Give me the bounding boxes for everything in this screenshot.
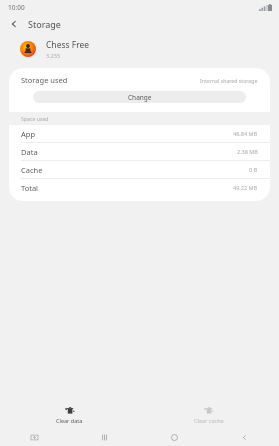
staticText: Data — [21, 147, 38, 157]
staticText: Storage — [28, 18, 61, 30]
staticText: Total — [21, 183, 39, 193]
staticText: Internal shared storage — [200, 77, 258, 84]
button[interactable]: Home — [139, 434, 209, 441]
button[interactable]: Recent apps — [69, 434, 139, 441]
staticText: Chess Free — [46, 39, 90, 51]
staticText: Space used — [21, 115, 49, 122]
button[interactable]: Back — [209, 434, 279, 441]
staticText: 2.38 MB — [237, 148, 258, 155]
staticText: 3.255 — [46, 52, 61, 59]
staticText: Cache — [21, 165, 43, 175]
staticText: Storage used — [21, 75, 68, 85]
staticText: App — [21, 129, 36, 139]
button[interactable]: Back — [4, 14, 24, 34]
button[interactable]: Change — [33, 91, 246, 103]
button[interactable]: Clear cache — [139, 403, 279, 426]
staticText: 49.22 MB — [233, 184, 258, 191]
button[interactable]: Clear data — [0, 403, 139, 426]
button[interactable]: App — [9, 125, 270, 142]
staticText: Clear data — [56, 417, 83, 424]
staticText: 0 B — [249, 166, 258, 173]
staticText: 10:00 — [8, 3, 25, 12]
staticText: Change — [128, 93, 152, 102]
button[interactable]: Cache — [9, 161, 270, 178]
button[interactable]: Hide keyboard — [0, 434, 69, 441]
staticText: 46.84 MB — [233, 130, 258, 137]
button[interactable]: Data — [9, 143, 270, 160]
staticText: Clear cache — [194, 417, 224, 424]
button[interactable]: Total — [9, 179, 270, 196]
